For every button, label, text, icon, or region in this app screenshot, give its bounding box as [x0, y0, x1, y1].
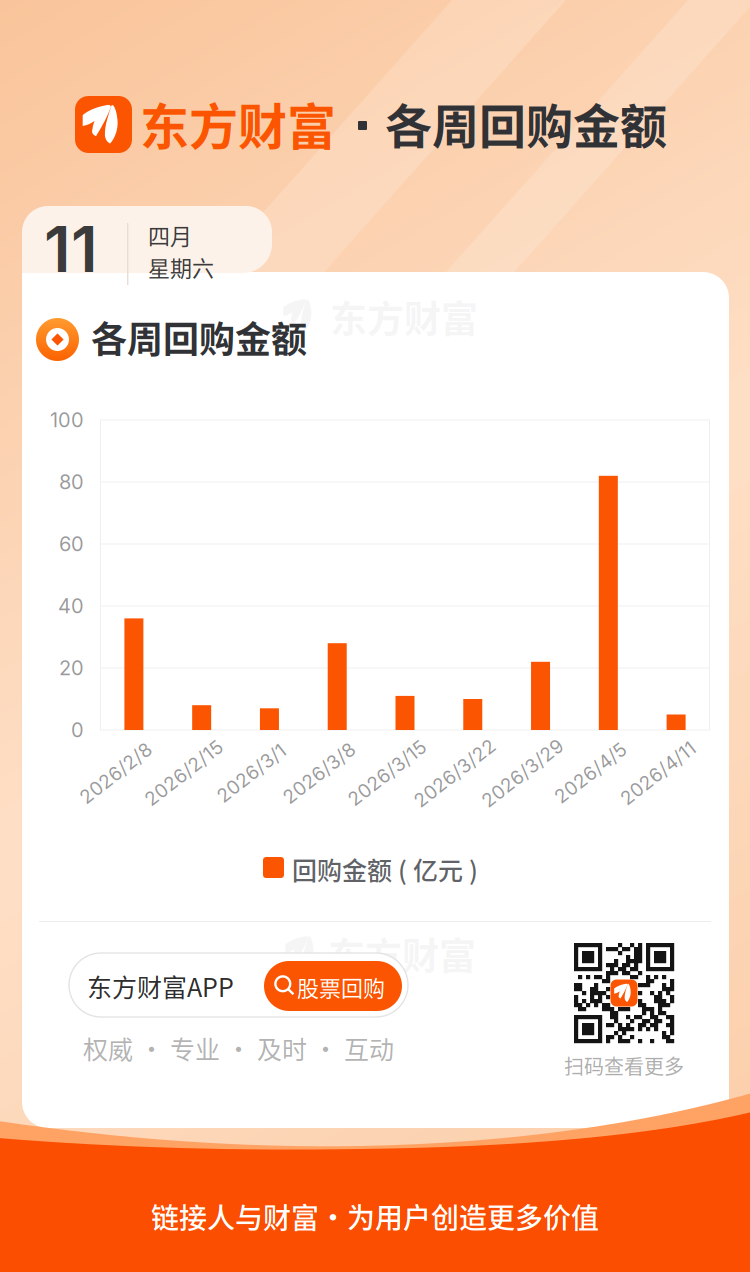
staticText: 链接人与财富·为用户创造更多价值 [151, 1196, 599, 1236]
staticText: 0 [71, 718, 84, 742]
button[interactable]: 东方财富APP [69, 953, 408, 1017]
staticText: 2026/3/15 [340, 761, 433, 784]
staticText: 2026/3/1 [210, 761, 292, 784]
staticText: 2026/2/8 [73, 761, 159, 784]
staticText: 股票回购 [297, 971, 385, 1003]
staticText: 2026/3/22 [406, 761, 504, 784]
staticText: 星期六 [148, 251, 214, 283]
staticText: 60 [59, 532, 84, 556]
staticText: 2026/3/29 [474, 761, 572, 784]
staticText: 东方财富 [330, 290, 478, 344]
staticText: 回购金额 ( 亿元 ) [292, 851, 478, 887]
staticText: 2026/3/8 [276, 761, 362, 784]
staticText: 40 [58, 594, 84, 618]
staticText: 20 [59, 656, 84, 680]
staticText: 2026/4/11 [613, 761, 703, 784]
staticText: 2026/4/5 [548, 761, 633, 784]
staticText: 100 [50, 408, 84, 432]
staticText: 11 [44, 211, 98, 287]
staticText: 东方财富 [140, 88, 336, 159]
staticText: 四月 [148, 219, 192, 251]
staticText: 东方财富APP [87, 968, 234, 1004]
staticText: 各周回购金额 [385, 89, 667, 157]
staticText: 权威 · 专业 · 及时 · 互动 [83, 1030, 394, 1066]
staticText: 80 [59, 470, 84, 494]
staticText: 各周回购金额 [91, 311, 307, 363]
staticText: 扫码查看更多 [564, 1051, 684, 1080]
staticText: 东方财富 [328, 927, 476, 981]
staticText: 2026/2/15 [137, 761, 230, 784]
